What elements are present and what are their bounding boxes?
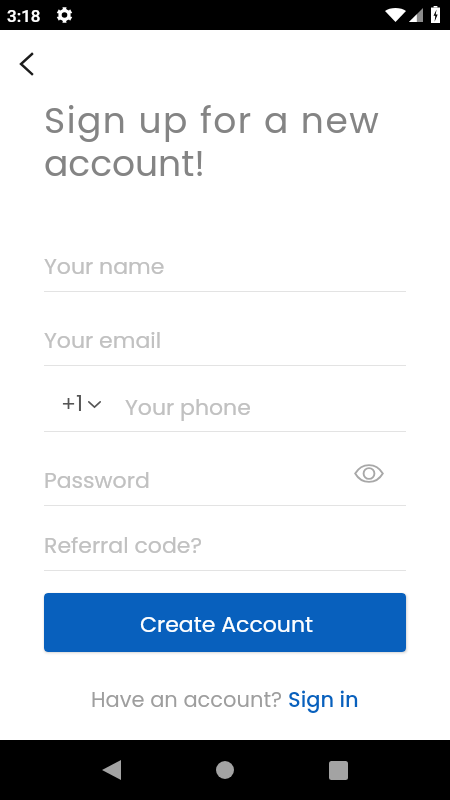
staticText: Your name [44, 251, 165, 282]
staticText: Create Account [140, 609, 314, 640]
staticText: account! [44, 138, 205, 188]
staticText: Sign up for a new [44, 95, 381, 145]
button[interactable]: Your phone [125, 392, 406, 431]
staticText: 3:18 [7, 6, 41, 26]
button[interactable]: Your name [44, 229, 406, 277]
staticText: Password [44, 465, 150, 496]
button[interactable]: Referral code? [44, 508, 406, 556]
staticText: Sign in [288, 685, 359, 714]
button[interactable]: Password [44, 443, 406, 491]
button[interactable]: Sign in [288, 685, 359, 714]
staticText: Have an account? [91, 685, 288, 714]
button[interactable]: Back [6, 44, 46, 84]
button[interactable]: Create Account [44, 593, 406, 652]
button[interactable]: Recent apps [314, 746, 362, 794]
staticText: Your phone [125, 392, 251, 423]
button[interactable]: Your email [44, 303, 406, 351]
button[interactable]: Show password [353, 457, 385, 489]
staticText: Referral code? [44, 530, 202, 561]
staticText: +1 [61, 388, 84, 419]
button[interactable]: +1 [52, 387, 110, 423]
button[interactable]: Home [201, 746, 249, 794]
button[interactable]: Back [87, 746, 135, 794]
staticText: Your email [44, 325, 162, 356]
